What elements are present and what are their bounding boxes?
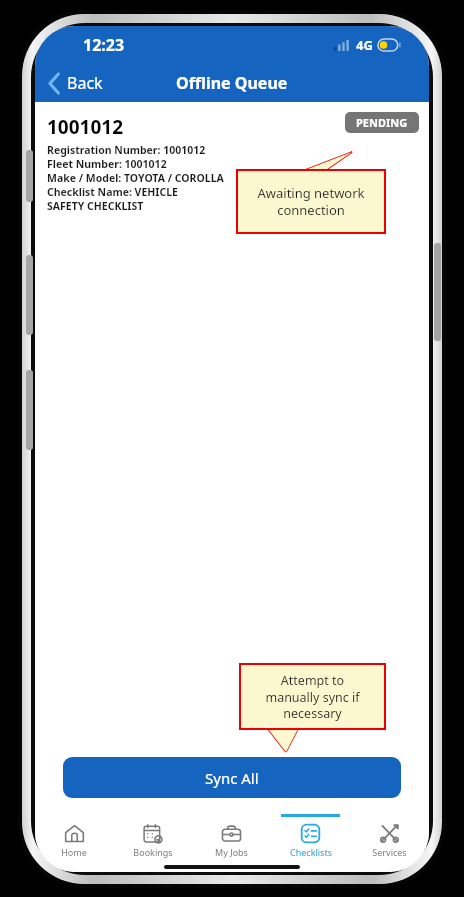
staticText: Offline Queue bbox=[176, 72, 288, 94]
staticText: Make / Model: TOYOTA / COROLLA bbox=[47, 171, 224, 185]
button[interactable]: Checklists bbox=[271, 814, 350, 872]
staticText: PENDING bbox=[356, 115, 408, 130]
button[interactable]: Home bbox=[35, 814, 113, 872]
button[interactable]: 1001012 bbox=[35, 102, 429, 221]
button[interactable]: My Jobs bbox=[192, 814, 271, 872]
button[interactable]: PENDING bbox=[345, 112, 419, 133]
staticText: Awaiting network connection bbox=[257, 184, 365, 219]
staticText: Checklists bbox=[290, 846, 332, 858]
staticText: My Jobs bbox=[215, 846, 248, 858]
button[interactable]: Services bbox=[350, 814, 429, 872]
staticText: Home bbox=[61, 846, 87, 858]
staticText: Back bbox=[67, 72, 103, 94]
button[interactable]: Sync All bbox=[63, 757, 401, 798]
staticText: Registration Number: 1001012 bbox=[47, 143, 206, 157]
staticText: Sync All bbox=[205, 768, 259, 788]
staticText: 1001012 bbox=[47, 114, 124, 140]
staticText: Attempt to manually sync if necessary bbox=[265, 672, 360, 721]
staticText: Checklist Name: VEHICLE bbox=[47, 185, 178, 199]
staticText: 4G bbox=[356, 36, 373, 54]
staticText: 12:23 bbox=[83, 34, 125, 56]
staticText: SAFETY CHECKLIST bbox=[47, 199, 144, 213]
button[interactable]: Back bbox=[35, 68, 115, 98]
button[interactable]: Bookings bbox=[113, 814, 192, 872]
staticText: Fleet Number: 1001012 bbox=[47, 157, 167, 171]
staticText: Services bbox=[372, 846, 407, 858]
staticText: Bookings bbox=[133, 846, 173, 858]
